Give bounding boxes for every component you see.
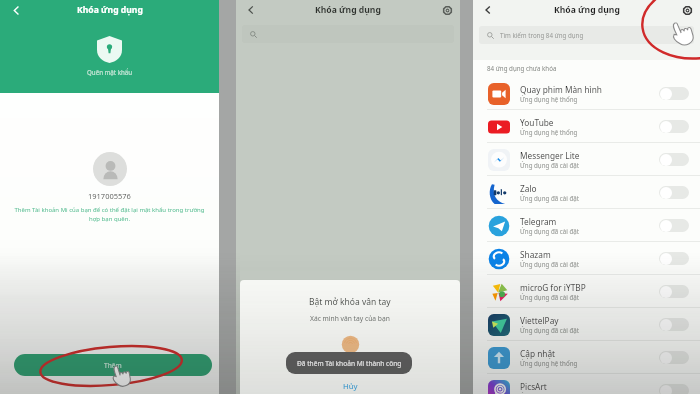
- staticText: Khóa ứng dụng: [77, 4, 143, 16]
- button[interactable]: Toggle ViettelPay: [659, 318, 689, 331]
- button[interactable]: Settings: [678, 1, 696, 19]
- staticText: Bật mở khóa vân tay: [309, 296, 391, 308]
- button[interactable]: ViettelPay: [473, 308, 700, 341]
- button[interactable]: Toggle YouTube: [659, 120, 689, 133]
- button[interactable]: Toggle Quay phim Màn hình: [659, 87, 689, 100]
- button[interactable]: Settings: [438, 1, 456, 19]
- staticText: Khóa ứng dụng: [554, 4, 620, 16]
- staticText: Quên mật khẩu: [87, 68, 133, 76]
- staticText: Ứng dụng đã cài đặt: [520, 260, 579, 268]
- staticText: Ứng dụng đã cài đặt: [520, 392, 579, 394]
- staticText: Zalo: [520, 183, 537, 194]
- button[interactable]: microG for iYTBP: [473, 275, 700, 308]
- staticText: Đã thêm Tài khoản Mi thành công: [297, 359, 402, 368]
- staticText: Telegram: [520, 216, 557, 227]
- staticText: 84 ứng dụng chưa khóa: [487, 64, 557, 72]
- staticText: Shazam: [520, 249, 551, 260]
- button[interactable]: Back: [478, 0, 498, 19]
- staticText: Ứng dụng hệ thống: [520, 95, 578, 103]
- staticText: Ứng dụng đã cài đặt: [520, 161, 579, 169]
- staticText: Hủy: [343, 381, 358, 392]
- staticText: ViettelPay: [520, 315, 559, 326]
- staticText: Ứng dụng hệ thống: [520, 359, 578, 367]
- button[interactable]: YouTube: [473, 110, 700, 143]
- staticText: Cập nhật: [520, 348, 556, 359]
- staticText: 1917005576: [88, 191, 131, 201]
- staticText: Quay phim Màn hình: [520, 84, 602, 95]
- button[interactable]: Messenger Lite: [473, 143, 700, 176]
- button[interactable]: Back: [241, 0, 261, 19]
- button[interactable]: Toggle Zalo: [659, 186, 689, 199]
- staticText: Thêm Tài khoản Mi của bạn để có thể đặt …: [12, 206, 207, 223]
- button[interactable]: Tìm kiếm trong 84 ứng dụng: [479, 26, 694, 44]
- button[interactable]: Quay phim Màn hình: [473, 77, 700, 110]
- button[interactable]: Back: [6, 0, 26, 20]
- staticText: Tìm kiếm trong 84 ứng dụng: [500, 31, 584, 39]
- staticText: Ứng dụng đã cài đặt: [520, 194, 579, 202]
- staticText: Ứng dụng đã cài đặt: [520, 293, 579, 301]
- button[interactable]: Toggle Telegram: [659, 219, 689, 232]
- staticText: YouTube: [520, 117, 554, 128]
- staticText: Ứng dụng đã cài đặt: [520, 326, 579, 334]
- staticText: Messenger Lite: [520, 150, 580, 161]
- button[interactable]: Toggle microG for iYTBP: [659, 285, 689, 298]
- button[interactable]: Hủy: [335, 380, 366, 393]
- button[interactable]: Toggle Cập nhật: [659, 351, 689, 364]
- button[interactable]: Toggle PicsArt: [659, 384, 689, 394]
- button[interactable]: Telegram: [473, 209, 700, 242]
- button[interactable]: Toggle Shazam: [659, 252, 689, 265]
- button[interactable]: Toggle Messenger Lite: [659, 153, 689, 166]
- button[interactable]: Zalo: [473, 176, 700, 209]
- staticText: Xác minh vân tay của bạn: [310, 314, 390, 323]
- button[interactable]: Thêm: [14, 354, 212, 376]
- button[interactable]: Cập nhật: [473, 341, 700, 374]
- staticText: Khóa ứng dụng: [315, 4, 381, 16]
- staticText: Thêm: [104, 361, 122, 370]
- button[interactable]: PicsArt: [473, 374, 700, 394]
- staticText: Ứng dụng đã cài đặt: [520, 227, 579, 235]
- staticText: Ứng dụng hệ thống: [520, 128, 578, 136]
- staticText: microG for iYTBP: [520, 282, 586, 293]
- staticText: PicsArt: [520, 381, 547, 392]
- button[interactable]: Shazam: [473, 242, 700, 275]
